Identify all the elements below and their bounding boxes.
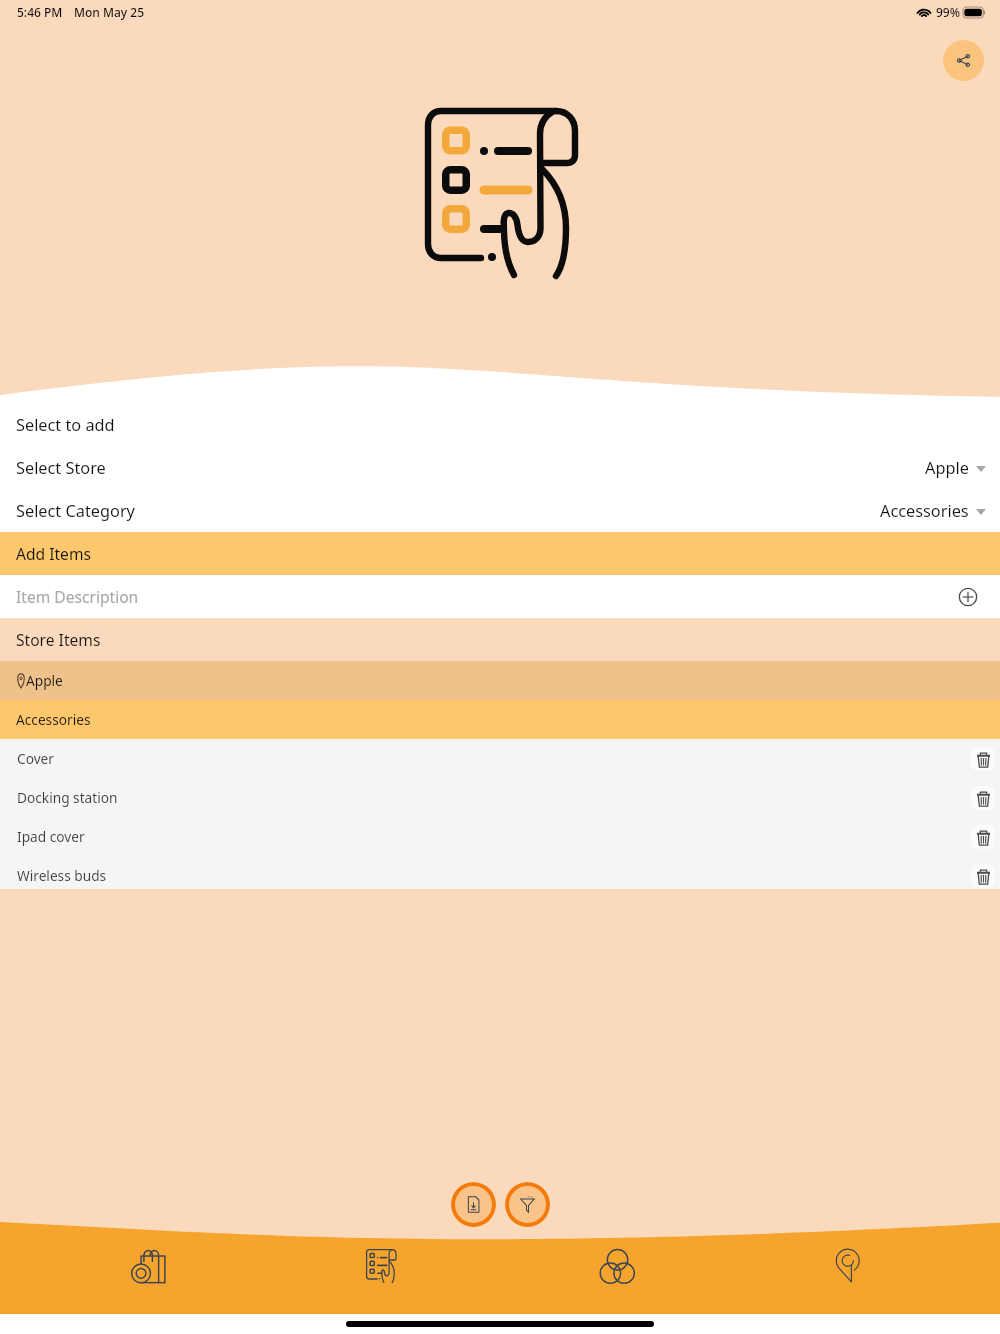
- button[interactable]: Add Items: [0, 532, 1000, 575]
- button[interactable]: Item Description: [0, 575, 1000, 618]
- button[interactable]: Apple: [0, 661, 1000, 700]
- staticText: Accessories: [880, 500, 969, 522]
- staticText: Add Items: [16, 543, 91, 564]
- button[interactable]: Ipad cover: [0, 817, 1000, 856]
- button[interactable]: Accessories: [0, 700, 1000, 739]
- staticText: Apple: [925, 457, 969, 479]
- button[interactable]: Select Category: [0, 489, 1000, 532]
- button[interactable]: Share: [943, 40, 984, 81]
- button[interactable]: Delete Docking station: [971, 786, 995, 810]
- staticText: Ipad cover: [17, 827, 85, 846]
- button[interactable]: Lists: [352, 1235, 414, 1297]
- staticText: Mon May 25: [74, 4, 145, 20]
- staticText: Item Description: [16, 586, 139, 607]
- button[interactable]: Cover: [0, 739, 1000, 778]
- button[interactable]: Delete Ipad cover: [971, 825, 995, 849]
- button[interactable]: Store Items: [0, 618, 1000, 661]
- staticText: Select to add: [16, 414, 115, 436]
- button[interactable]: Delete Cover: [971, 747, 995, 771]
- staticText: 5:46 PM: [17, 4, 63, 20]
- button[interactable]: Select Store: [0, 446, 1000, 489]
- button[interactable]: Select to add: [0, 403, 1000, 446]
- staticText: Apple: [26, 671, 63, 690]
- button[interactable]: Shop: [118, 1235, 180, 1297]
- button[interactable]: Docking station: [0, 778, 1000, 817]
- staticText: Docking station: [17, 788, 118, 807]
- staticText: Store Items: [16, 629, 101, 650]
- staticText: Select Store: [16, 457, 106, 479]
- button[interactable]: Download: [451, 1182, 496, 1227]
- staticText: Select Category: [16, 500, 135, 522]
- staticText: Accessories: [16, 710, 91, 729]
- button[interactable]: Delete Wireless buds: [971, 864, 995, 888]
- staticText: Cover: [17, 749, 54, 768]
- button[interactable]: Compare: [586, 1235, 648, 1297]
- button[interactable]: Wireless buds: [0, 856, 1000, 895]
- staticText: Wireless buds: [17, 866, 107, 885]
- staticText: 99%: [936, 4, 960, 20]
- button[interactable]: Stores: [821, 1235, 883, 1297]
- button[interactable]: Filter: [505, 1182, 550, 1227]
- button[interactable]: Add item: [956, 585, 980, 609]
